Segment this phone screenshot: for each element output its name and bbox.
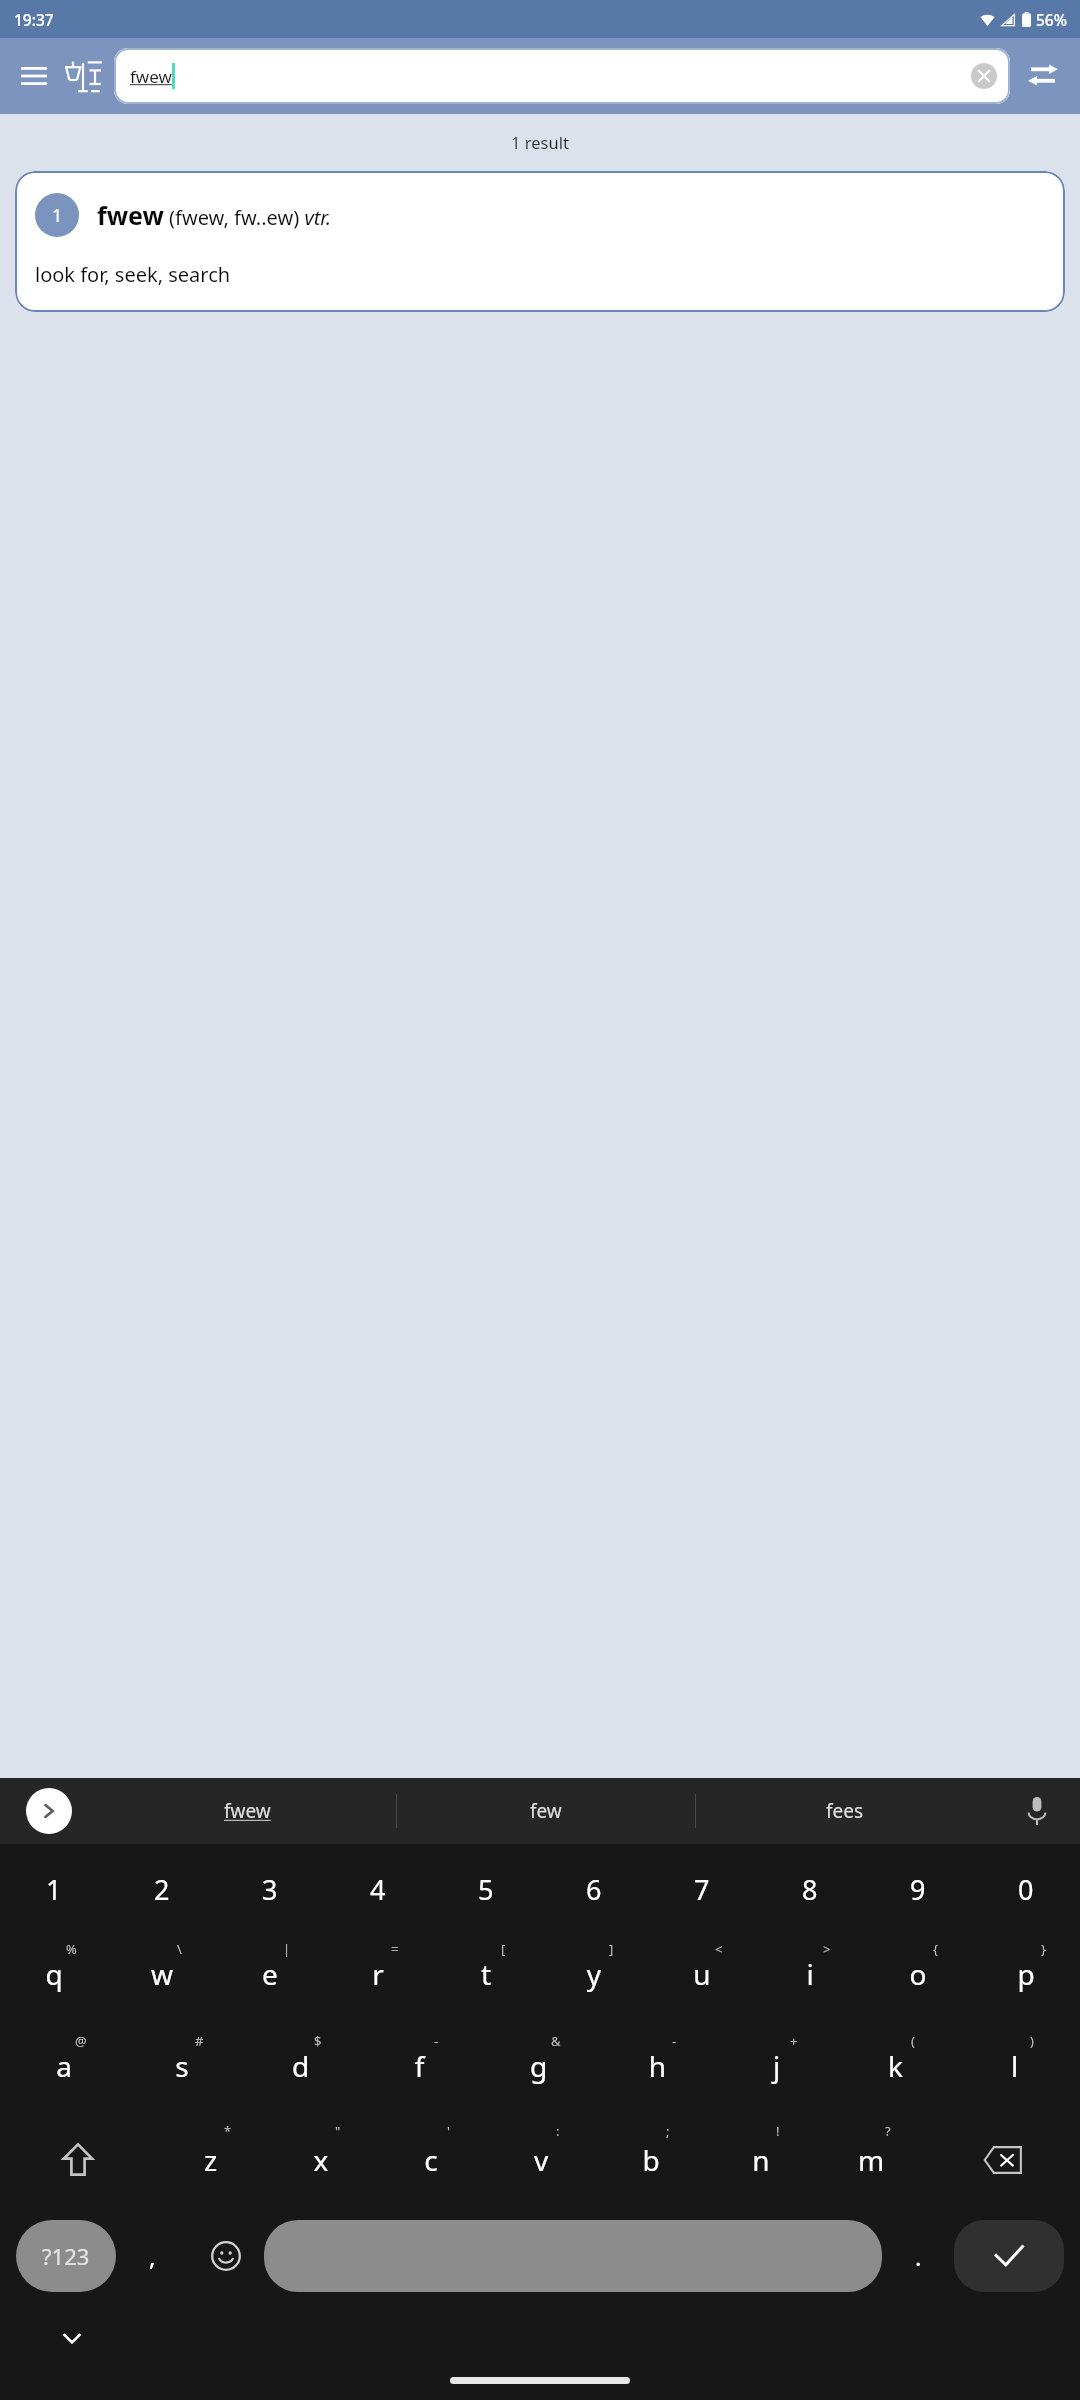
staticText: ! bbox=[776, 2122, 780, 2140]
button[interactable]: q bbox=[0, 1928, 108, 2020]
staticText: 1 bbox=[52, 203, 63, 228]
button[interactable]: 9 bbox=[864, 1850, 972, 1928]
button[interactable]: y bbox=[540, 1928, 648, 2020]
staticText: 1 result bbox=[0, 131, 1080, 153]
staticText: o bbox=[864, 1955, 972, 1993]
button[interactable]: ?123 bbox=[16, 2220, 116, 2292]
button[interactable]: o bbox=[864, 1928, 972, 2020]
button[interactable]: h bbox=[598, 2020, 717, 2112]
staticText: 7 bbox=[694, 1871, 710, 1908]
staticText: 4 bbox=[370, 1871, 386, 1908]
staticText: ' bbox=[447, 2122, 450, 2140]
staticText: } bbox=[1041, 1940, 1046, 1958]
staticText: { bbox=[933, 1940, 938, 1958]
staticText: ?123 bbox=[42, 2241, 90, 2271]
button[interactable]: w bbox=[108, 1928, 216, 2020]
button[interactable]: s bbox=[123, 2020, 241, 2112]
staticText: h bbox=[598, 2047, 717, 2085]
button[interactable]: Emoji bbox=[188, 2208, 264, 2304]
button[interactable]: n bbox=[706, 2112, 816, 2208]
staticText: ] bbox=[609, 1940, 614, 1958]
staticText: fwew bbox=[130, 65, 172, 88]
button[interactable]: fwew bbox=[98, 1778, 396, 1844]
button[interactable]: t bbox=[432, 1928, 540, 2020]
button[interactable]: Shift bbox=[0, 2112, 155, 2208]
button[interactable]: Space bbox=[264, 2220, 882, 2292]
button[interactable]: 2 bbox=[108, 1850, 216, 1928]
staticText: < bbox=[715, 1940, 723, 1958]
button[interactable]: u bbox=[648, 1928, 756, 2020]
staticText: v bbox=[486, 2141, 596, 2179]
staticText: - bbox=[434, 2032, 439, 2050]
staticText: k bbox=[836, 2047, 955, 2085]
button[interactable]: z bbox=[155, 2112, 266, 2208]
button[interactable]: e bbox=[216, 1928, 324, 2020]
staticText: a bbox=[5, 2047, 123, 2085]
staticText: ; bbox=[666, 2122, 670, 2140]
button[interactable]: fwew bbox=[114, 48, 1010, 104]
staticText: fwew (fwew, fw..ew) vtr. bbox=[97, 198, 332, 232]
button[interactable]: 5 bbox=[432, 1850, 540, 1928]
staticText: 6 bbox=[586, 1871, 602, 1908]
staticText: r bbox=[324, 1955, 432, 1993]
button[interactable]: 7 bbox=[648, 1850, 756, 1928]
staticText: 1 bbox=[46, 1871, 62, 1908]
staticText: p bbox=[972, 1955, 1080, 1993]
button[interactable]: i bbox=[756, 1928, 864, 2020]
button[interactable]: Na'vi dictionary bbox=[60, 53, 106, 99]
button[interactable]: l bbox=[955, 2020, 1074, 2112]
button[interactable]: 4 bbox=[324, 1850, 432, 1928]
staticText: + bbox=[790, 2032, 798, 2050]
button[interactable]: Hide keyboard bbox=[48, 2314, 96, 2362]
staticText: e bbox=[216, 1955, 324, 1993]
button[interactable]: m bbox=[816, 2112, 926, 2208]
staticText: b bbox=[596, 2141, 706, 2179]
staticText: fees bbox=[826, 1798, 864, 1824]
staticText: few bbox=[530, 1798, 562, 1824]
button[interactable]: More suggestions bbox=[26, 1788, 72, 1834]
staticText: z bbox=[155, 2141, 266, 2179]
button[interactable]: , bbox=[116, 2208, 188, 2304]
staticText: c bbox=[376, 2141, 486, 2179]
button[interactable]: 0 bbox=[972, 1850, 1080, 1928]
button[interactable]: 8 bbox=[756, 1850, 864, 1928]
button[interactable]: . bbox=[882, 2208, 954, 2304]
staticText: = bbox=[391, 1940, 399, 1958]
button[interactable]: c bbox=[376, 2112, 486, 2208]
button[interactable]: Voice input bbox=[994, 1778, 1080, 1844]
button[interactable]: b bbox=[596, 2112, 706, 2208]
staticText: look for, seek, search bbox=[35, 261, 231, 288]
staticText: @ bbox=[75, 2032, 87, 2050]
staticText: 19:37 bbox=[14, 9, 54, 30]
button[interactable]: 6 bbox=[540, 1850, 648, 1928]
button[interactable]: Open navigation menu bbox=[12, 54, 56, 98]
staticText: m bbox=[816, 2141, 926, 2179]
staticText: . bbox=[915, 2240, 922, 2273]
button[interactable]: p bbox=[972, 1928, 1080, 2020]
button[interactable]: a bbox=[5, 2020, 123, 2112]
button[interactable]: g bbox=[479, 2020, 598, 2112]
button[interactable]: 1 bbox=[15, 171, 1065, 312]
button[interactable]: d bbox=[241, 2020, 360, 2112]
staticText: ( bbox=[911, 2032, 915, 2050]
button[interactable]: 3 bbox=[216, 1850, 324, 1928]
button[interactable]: j bbox=[717, 2020, 836, 2112]
button[interactable]: few bbox=[397, 1778, 695, 1844]
staticText: , bbox=[149, 2240, 156, 2273]
staticText: g bbox=[479, 2047, 598, 2085]
button[interactable]: Backspace bbox=[926, 2112, 1080, 2208]
button[interactable]: r bbox=[324, 1928, 432, 2020]
button[interactable]: x bbox=[266, 2112, 376, 2208]
button[interactable]: f bbox=[360, 2020, 479, 2112]
button[interactable]: k bbox=[836, 2020, 955, 2112]
button[interactable]: fees bbox=[696, 1778, 994, 1844]
button[interactable]: Enter bbox=[954, 2220, 1064, 2292]
button[interactable]: v bbox=[486, 2112, 596, 2208]
staticText: 8 bbox=[802, 1871, 818, 1908]
staticText: # bbox=[195, 2032, 204, 2050]
staticText: 2 bbox=[154, 1871, 170, 1908]
button[interactable]: 1 bbox=[0, 1850, 108, 1928]
staticText: i bbox=[756, 1955, 864, 1993]
button[interactable]: Swap languages bbox=[1016, 49, 1070, 103]
button[interactable]: Clear search bbox=[966, 58, 1002, 94]
